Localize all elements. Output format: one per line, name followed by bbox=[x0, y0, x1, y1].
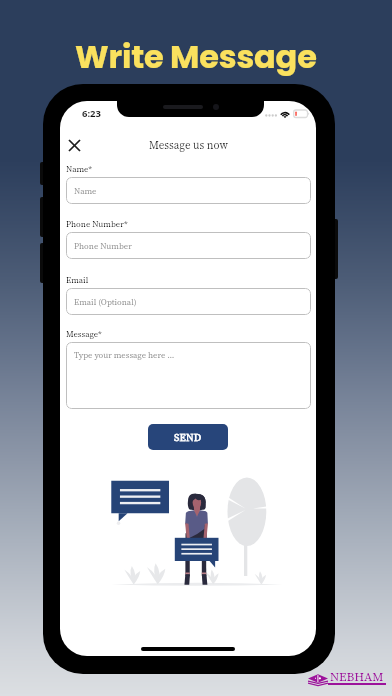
staticText: SEND bbox=[174, 430, 202, 444]
button[interactable]: Email (Optional) bbox=[66, 288, 311, 315]
staticText: Name* bbox=[66, 163, 92, 175]
staticText: Message us now bbox=[149, 138, 228, 153]
button[interactable]: Name bbox=[66, 177, 311, 204]
staticText: Type your message here ... bbox=[74, 349, 175, 361]
button[interactable]: Close bbox=[63, 134, 85, 156]
staticText: Message* bbox=[66, 328, 102, 340]
staticText: NEBHAM bbox=[330, 668, 384, 685]
button[interactable]: SEND bbox=[148, 424, 228, 450]
staticText: Phone Number* bbox=[66, 218, 128, 230]
staticText: Phone Number bbox=[74, 240, 132, 252]
button[interactable]: Nebham bbox=[308, 667, 386, 687]
staticText: 6:23 bbox=[82, 107, 101, 120]
staticText: Name bbox=[74, 185, 97, 197]
button[interactable]: Type your message here ... bbox=[66, 342, 311, 409]
staticText: Email bbox=[66, 274, 89, 286]
staticText: Email (Optional) bbox=[74, 296, 137, 308]
button[interactable]: Phone Number bbox=[66, 232, 311, 259]
staticText: Write Message bbox=[75, 34, 317, 79]
